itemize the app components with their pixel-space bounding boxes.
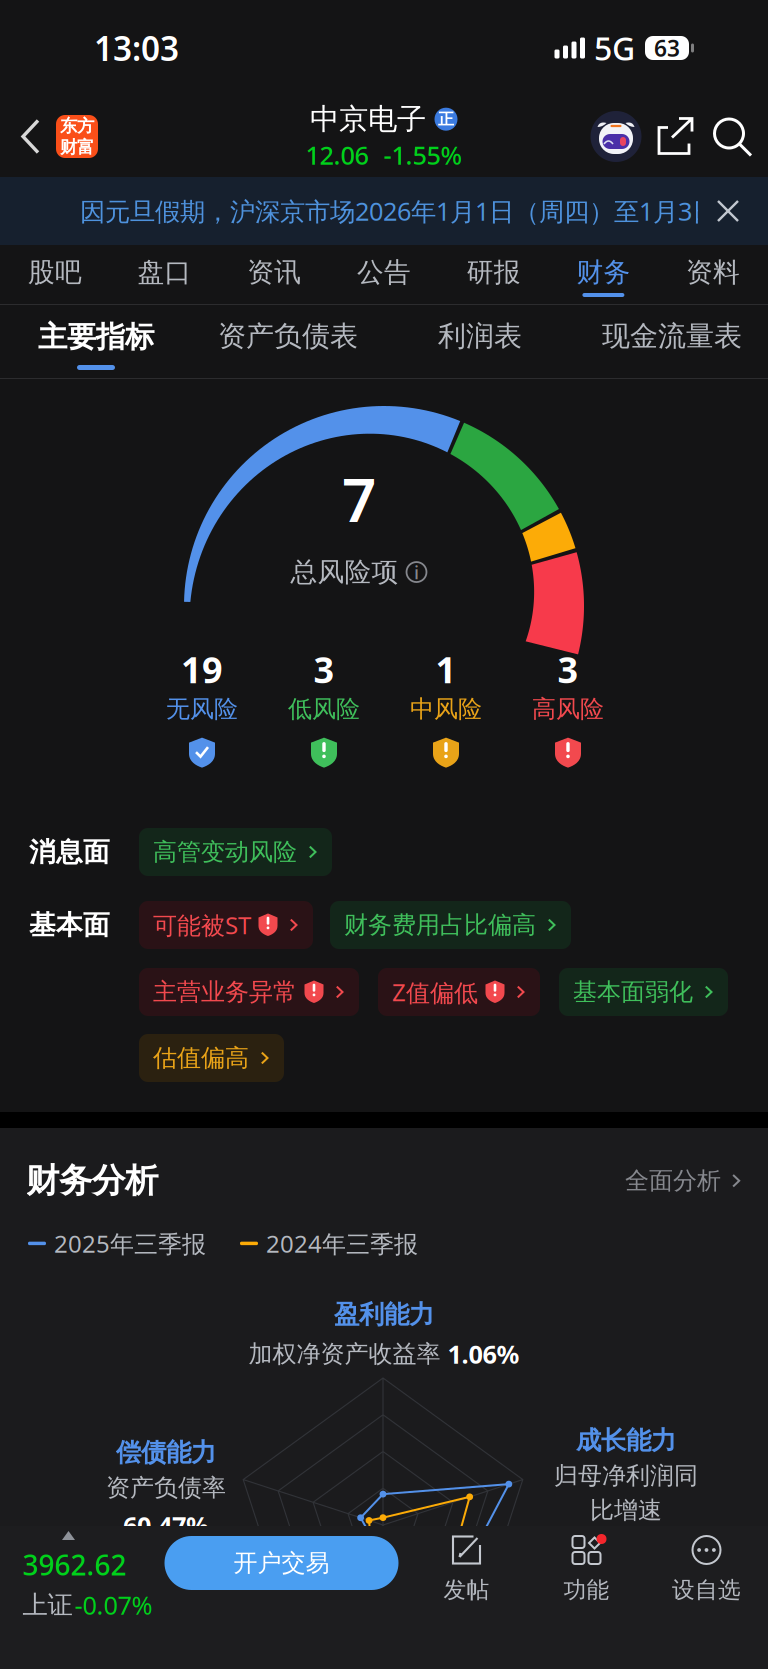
button[interactable]: 功能	[526, 1526, 646, 1669]
button[interactable]: 现金流量表	[576, 305, 768, 379]
staticText: 12.06	[305, 138, 368, 172]
button[interactable]: 基本面弱化	[559, 968, 728, 1016]
staticText: 财富	[60, 136, 94, 158]
staticText: 盈利能力	[334, 1299, 434, 1330]
staticText: 127.24%	[576, 1531, 676, 1565]
button[interactable]: 搜索	[708, 112, 756, 160]
button[interactable]: 3962.62	[0, 1526, 160, 1669]
button[interactable]: 发帖	[406, 1526, 526, 1669]
staticText: 成长能力	[576, 1425, 676, 1456]
staticText: 开户交易	[233, 1548, 329, 1578]
button[interactable]: 利润表	[384, 305, 576, 379]
staticText: i	[414, 560, 419, 584]
staticText: 63	[654, 33, 680, 63]
staticText: 7	[342, 459, 376, 539]
staticText: 基本面弱化	[573, 977, 693, 1007]
button[interactable]: 盘口	[110, 245, 219, 305]
staticText: 基本面	[29, 909, 110, 941]
staticText: 5G	[594, 27, 635, 69]
staticText: 发帖	[443, 1576, 489, 1604]
staticText: 资料	[686, 256, 740, 289]
button[interactable]: 财务	[548, 245, 658, 305]
staticText: 消息面	[29, 836, 110, 868]
staticText: 资产负债率	[106, 1473, 226, 1503]
staticText: 主要指标	[38, 319, 154, 355]
staticText: 全面分析	[625, 1166, 721, 1195]
button[interactable]: 高管变动风险	[139, 828, 332, 876]
staticText: 19	[181, 645, 223, 693]
button[interactable]: 财务费用占比偏高	[330, 901, 571, 949]
staticText: 可能被ST	[153, 909, 251, 941]
staticText: 上证	[22, 1589, 72, 1620]
button[interactable]: 1	[385, 647, 507, 767]
staticText: 高管变动风险	[153, 837, 297, 867]
button[interactable]: 返回	[0, 98, 108, 174]
button[interactable]: 分享	[652, 112, 700, 160]
staticText: 东方	[60, 115, 94, 136]
staticText: 现金流量表	[602, 319, 742, 353]
button[interactable]: 设自选	[646, 1526, 766, 1669]
staticText: 利润表	[438, 319, 522, 353]
button[interactable]: 3	[263, 647, 385, 767]
button[interactable]: AI助手	[588, 108, 644, 164]
staticText: 1.06%	[447, 1337, 519, 1371]
button[interactable]: 公告	[329, 245, 439, 305]
staticText: 功能	[563, 1576, 609, 1604]
staticText: 60.47%	[123, 1509, 209, 1542]
button[interactable]: 可能被ST	[139, 901, 313, 949]
button[interactable]: 开户交易	[160, 1526, 398, 1669]
staticText: 估值偏高	[153, 1043, 249, 1073]
staticText: 3	[313, 645, 334, 693]
staticText: 资讯	[247, 256, 301, 289]
button[interactable]: 全面分析	[625, 1158, 744, 1203]
button[interactable]: 19	[141, 647, 263, 767]
staticText: 比增速	[590, 1496, 662, 1525]
staticText: 总风险项	[290, 556, 398, 588]
staticText: 低风险	[288, 694, 360, 724]
button[interactable]: 估值偏高	[139, 1034, 284, 1082]
button[interactable]: 研报	[439, 245, 548, 305]
staticText: 正	[438, 109, 454, 129]
staticText: 中京电子	[310, 101, 426, 137]
button[interactable]: 主营业务异常	[139, 968, 359, 1016]
staticText: 股吧	[28, 256, 82, 289]
button[interactable]: 关闭	[706, 189, 750, 233]
staticText: 公告	[357, 256, 411, 289]
staticText: 2025年三季报	[54, 1227, 206, 1259]
staticText: 因元旦假期，沪深京市场2026年1月1日（周四）至1月3日	[80, 194, 717, 228]
staticText: 财务费用占比偏高	[344, 910, 536, 940]
button[interactable]: 主要指标	[0, 305, 192, 379]
staticText: 2024年三季报	[266, 1227, 418, 1259]
staticText: 1	[435, 645, 456, 693]
staticText: Z值偏低	[392, 976, 478, 1008]
staticText: 归母净利润同	[554, 1461, 698, 1491]
staticText: 盘口	[138, 256, 192, 289]
staticText: 高风险	[532, 694, 604, 724]
staticText: 3	[557, 645, 578, 693]
staticText: 3962.62	[22, 1546, 126, 1583]
button[interactable]: 资讯	[219, 245, 329, 305]
staticText: 无风险	[166, 694, 238, 724]
staticText: 设自选	[672, 1576, 741, 1604]
button[interactable]: Z值偏低	[378, 968, 540, 1016]
button[interactable]: 股吧	[0, 245, 110, 305]
staticText: 加权净资产收益率	[248, 1339, 440, 1369]
staticText: 中风险	[410, 694, 482, 724]
staticText: 财务	[576, 256, 630, 289]
button[interactable]: 资产负债表	[192, 305, 384, 379]
staticText: 资产负债表	[218, 319, 358, 353]
staticText: 偿债能力	[116, 1437, 216, 1468]
button[interactable]: 3	[507, 647, 629, 767]
staticText: 13:03	[94, 26, 179, 70]
button[interactable]: 资料	[658, 245, 768, 305]
staticText: -0.07%	[74, 1588, 152, 1622]
staticText: 研报	[467, 256, 521, 289]
staticText: 财务分析	[26, 1160, 158, 1201]
staticText: -1.55%	[383, 138, 462, 172]
staticText: 主营业务异常	[153, 977, 297, 1007]
